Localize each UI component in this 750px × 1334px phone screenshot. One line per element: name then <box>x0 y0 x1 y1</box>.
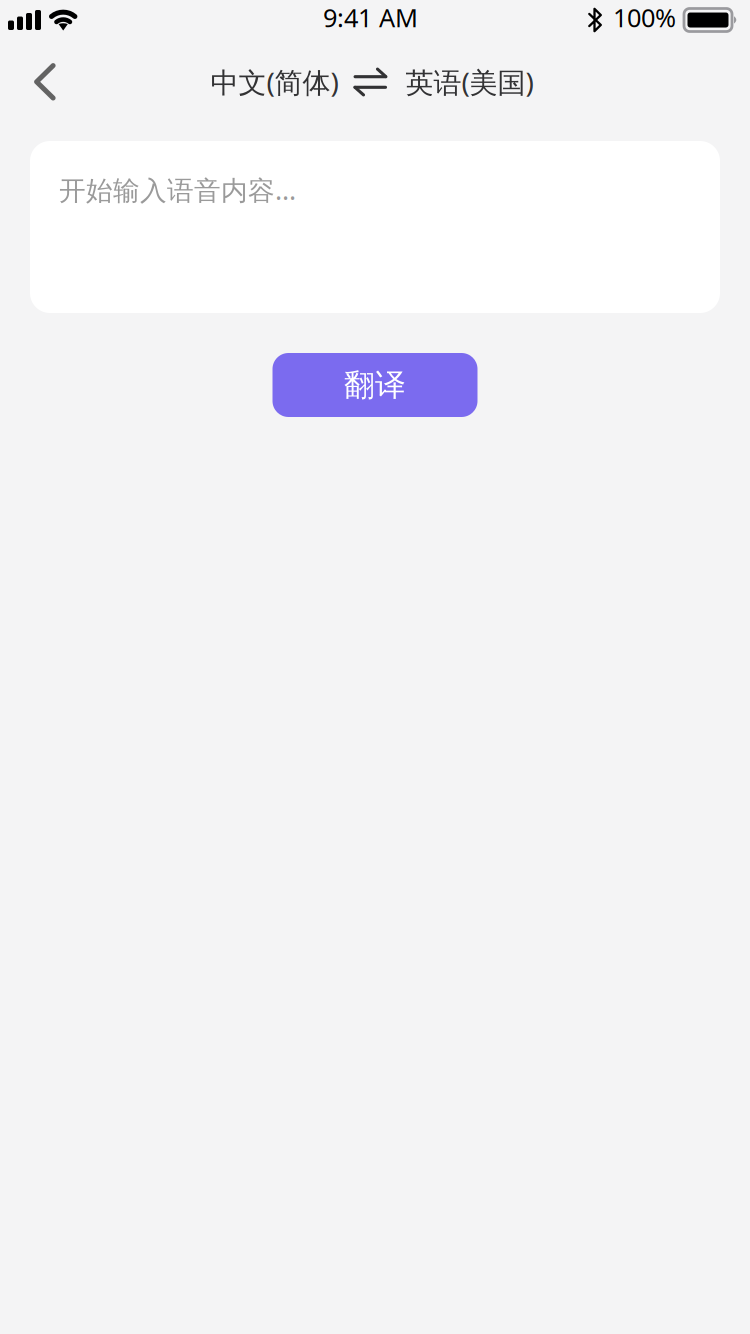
button[interactable]: 翻译 <box>272 353 477 417</box>
staticText: 9:41 AM <box>323 1 418 34</box>
staticText: 开始输入语音内容... <box>59 172 296 207</box>
staticText: 英语(美国) <box>405 63 533 101</box>
staticText: 100% <box>613 1 676 34</box>
button[interactable]: Back <box>12 40 78 124</box>
button[interactable]: 英语(美国) <box>398 57 540 107</box>
button[interactable]: 中文(简体) <box>203 57 345 107</box>
staticText: 翻译 <box>344 366 406 404</box>
button[interactable]: 开始输入语音内容... <box>30 141 720 313</box>
staticText: 中文(简体) <box>210 63 338 101</box>
